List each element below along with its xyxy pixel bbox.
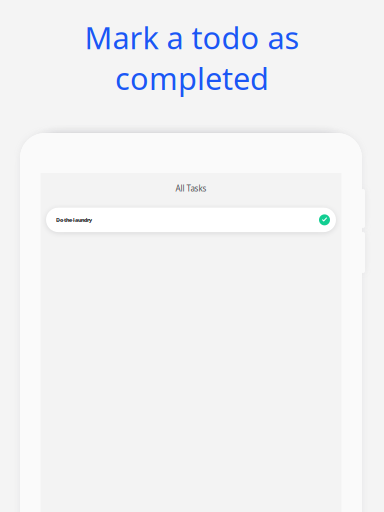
button[interactable]: Do the laundry bbox=[46, 208, 336, 232]
staticText: All Tasks bbox=[175, 183, 206, 194]
staticText: Mark a todo as bbox=[84, 17, 299, 58]
staticText: completed bbox=[115, 58, 269, 98]
staticText: Do the laundry bbox=[56, 216, 92, 223]
